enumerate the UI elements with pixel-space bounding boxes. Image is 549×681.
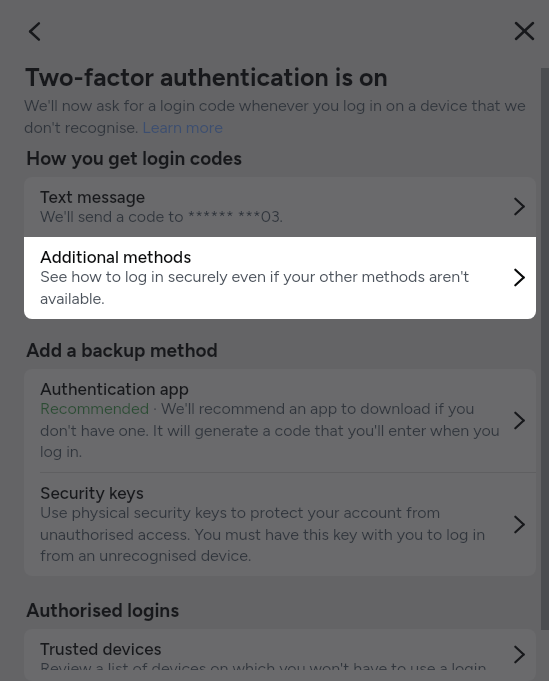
button[interactable]: Back [18, 15, 50, 47]
staticText: Text message [40, 187, 146, 207]
staticText: Authorised logins [26, 599, 180, 622]
staticText: Authentication app [40, 379, 189, 399]
button[interactable]: Trusted devices [24, 629, 536, 681]
staticText: We'll now ask for a login code whenever … [24, 96, 536, 137]
staticText: Recommended · We'll recommend an app to … [40, 399, 500, 461]
staticText: Security keys [40, 483, 144, 503]
staticText: Add a backup method [26, 339, 218, 362]
staticText: Review a list of devices on which you wo… [40, 659, 500, 670]
staticText: See how to log in securely even if your … [40, 267, 500, 308]
button[interactable]: Additional methods [24, 237, 536, 319]
button[interactable]: Text message [24, 177, 536, 237]
button[interactable]: Close [507, 14, 541, 48]
staticText: Trusted devices [40, 639, 162, 659]
staticText: We'll send a code to ****** ***03. [40, 207, 283, 226]
staticText: How you get login codes [26, 147, 242, 170]
staticText: Use physical security keys to protect yo… [40, 503, 500, 565]
button[interactable]: Authentication app [24, 369, 536, 472]
button[interactable]: Security keys [24, 473, 536, 576]
staticText: Additional methods [40, 247, 192, 267]
staticText: Two-factor authentication is on [25, 62, 388, 92]
